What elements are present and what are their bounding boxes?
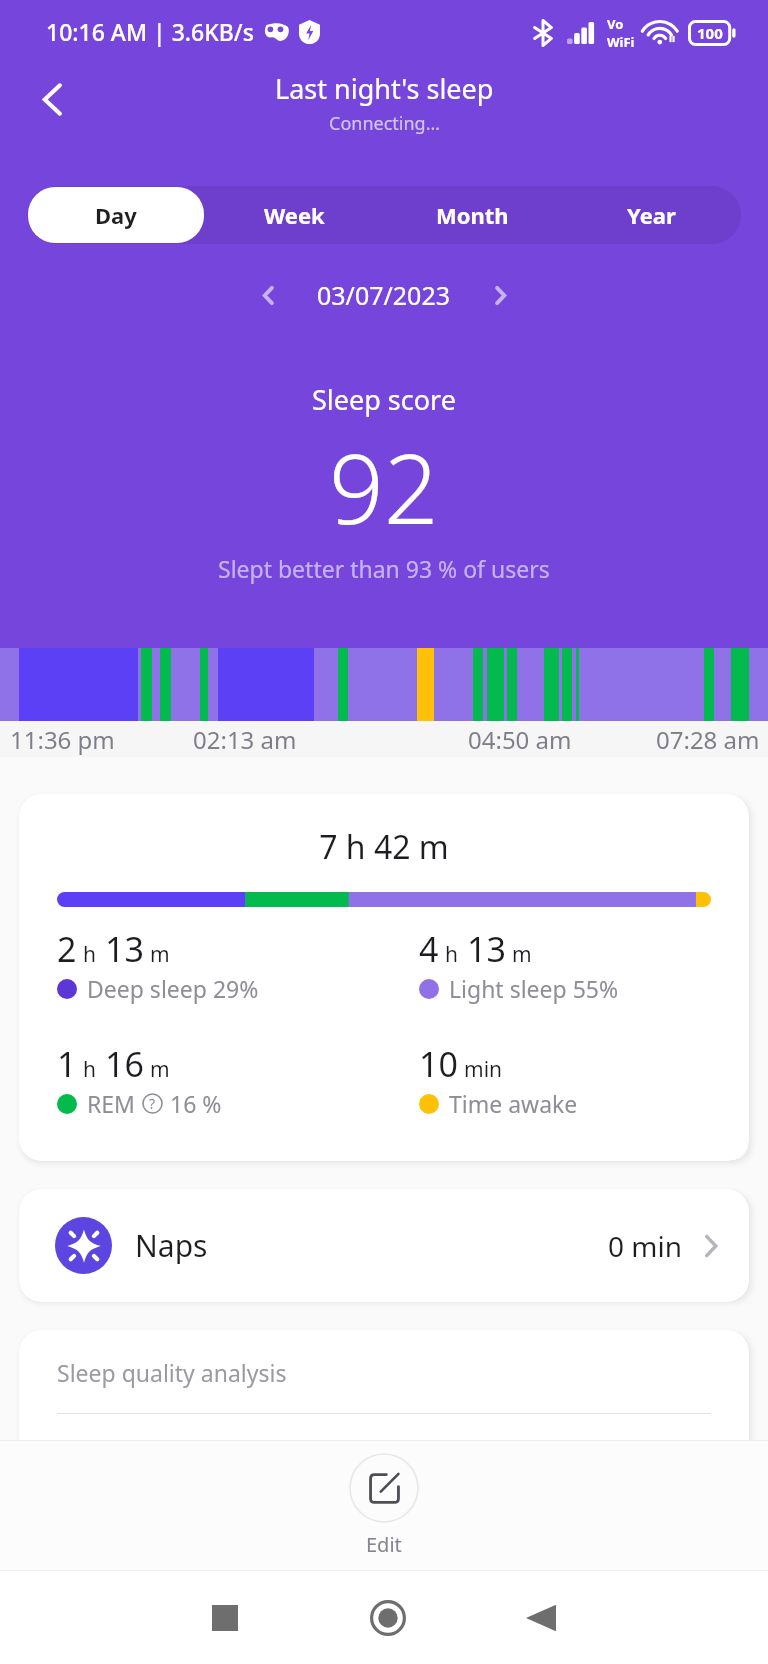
staticText: h (445, 940, 458, 969)
staticText: Slept better than 93 % of users (218, 553, 550, 584)
staticText: 02:13 am (193, 723, 297, 756)
staticText: Deep sleep 29% (87, 973, 259, 1004)
button[interactable]: Week (206, 187, 382, 243)
staticText: Week (264, 200, 325, 230)
staticText: Edit (366, 1531, 402, 1558)
staticText: Time awake (449, 1088, 578, 1119)
staticText: 07:28 am (656, 723, 760, 756)
staticText: 16 (105, 1041, 144, 1087)
staticText: 0 min (608, 1227, 683, 1265)
staticText: 1 (57, 1041, 77, 1087)
staticText: Month (436, 200, 509, 230)
button[interactable]: Day (28, 187, 204, 243)
button[interactable]: Previous day (244, 271, 292, 319)
staticText: 2 (57, 926, 77, 972)
staticText: m (150, 1055, 170, 1084)
staticText: 04:50 am (468, 723, 572, 756)
button[interactable]: Next day (476, 271, 524, 319)
staticText: 92 (329, 421, 439, 552)
staticText: 13 (105, 926, 144, 972)
staticText: min (464, 1055, 503, 1084)
staticText: 4 (419, 926, 439, 972)
staticText: ? (149, 1094, 156, 1113)
staticText: Vo (607, 15, 624, 33)
staticText: Light sleep 55% (449, 973, 619, 1004)
staticText: Naps (135, 1225, 208, 1266)
button[interactable]: Year (563, 187, 740, 243)
staticText: 13 (467, 926, 506, 972)
button[interactable]: Back (22, 69, 82, 129)
staticText: Day (95, 200, 137, 230)
staticText: 7 h 42 m (57, 825, 711, 869)
staticText: m (150, 940, 170, 969)
staticText: Connecting… (329, 111, 440, 136)
staticText: 100 (697, 23, 723, 43)
staticText: Sleep score (312, 381, 456, 418)
button[interactable]: Back (491, 1571, 591, 1664)
staticText: m (512, 940, 532, 969)
staticText: REM (87, 1088, 135, 1119)
staticText: 03/07/2023 (317, 278, 451, 312)
staticText: 10 (419, 1041, 458, 1087)
button[interactable]: Naps (19, 1189, 749, 1302)
button[interactable]: Home (338, 1571, 438, 1664)
staticText: Last night's sleep (275, 70, 494, 107)
staticText: h (83, 1055, 96, 1084)
staticText: Year (627, 200, 676, 230)
button[interactable]: Edit (0, 1441, 768, 1570)
staticText: WiFi (607, 33, 635, 51)
staticText: 11:36 pm (10, 723, 115, 756)
staticText: 16 % (170, 1088, 222, 1119)
button[interactable]: Month (384, 187, 561, 243)
button[interactable]: Recent apps (175, 1571, 275, 1664)
staticText: Sleep quality analysis (57, 1357, 287, 1388)
staticText: 10:16 AM | 3.6KB/s (46, 16, 254, 47)
staticText: h (83, 940, 96, 969)
